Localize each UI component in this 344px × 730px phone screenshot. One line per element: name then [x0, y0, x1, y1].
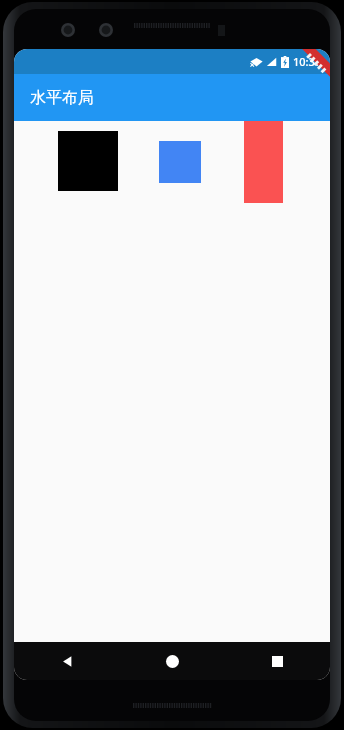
staticText: 水平布局 — [30, 88, 94, 108]
staticText: 10:37 — [293, 54, 322, 69]
button[interactable]: Back — [14, 642, 120, 680]
button[interactable]: Home — [120, 642, 225, 680]
button[interactable]: Recent apps — [225, 642, 330, 680]
